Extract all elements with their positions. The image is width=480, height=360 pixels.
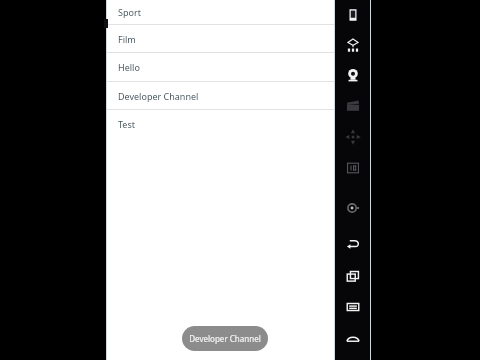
button[interactable]: Record — [335, 193, 370, 223]
staticText: Hello — [118, 61, 140, 73]
button[interactable]: Screenshot — [335, 0, 370, 30]
button[interactable]: Sport — [107, 0, 334, 25]
staticText: Sport — [118, 6, 141, 18]
button[interactable]: Overview — [335, 261, 370, 291]
button[interactable]: Developer Channel — [182, 326, 268, 351]
button[interactable]: GPS — [335, 30, 370, 60]
button[interactable]: Developer Channel — [107, 82, 334, 110]
staticText: Developer Channel — [189, 333, 261, 344]
button[interactable]: Menu — [335, 292, 370, 322]
button[interactable]: Direction pad — [335, 122, 370, 152]
button[interactable]: Record video — [335, 91, 370, 121]
button[interactable]: Camera — [335, 60, 370, 90]
button[interactable]: Test — [107, 110, 334, 138]
button[interactable]: Film — [107, 25, 334, 53]
staticText: Test — [118, 118, 136, 130]
staticText: Film — [118, 33, 136, 45]
button[interactable]: Back — [335, 229, 370, 259]
staticText: Developer Channel — [118, 90, 199, 102]
button[interactable]: Device id — [335, 153, 370, 183]
button[interactable]: Home — [335, 324, 370, 354]
button[interactable]: Hello — [107, 53, 334, 82]
